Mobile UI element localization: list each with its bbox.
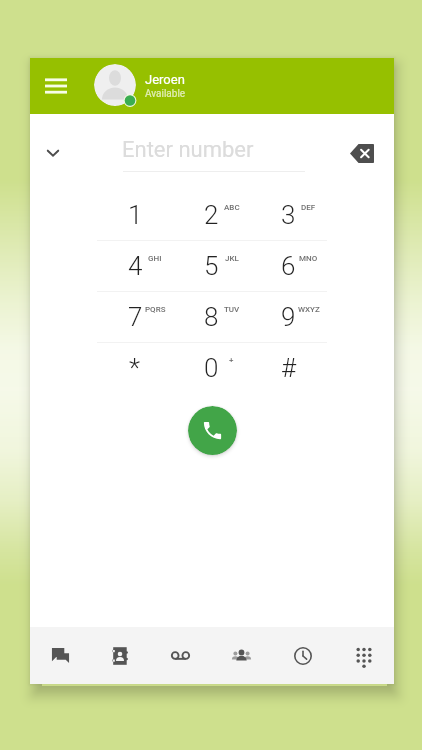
staticText: 1: [128, 200, 143, 230]
staticText: DEF: [301, 203, 316, 212]
button[interactable]: 7: [97, 292, 173, 342]
staticText: WXYZ: [298, 305, 320, 314]
button[interactable]: #: [250, 343, 327, 393]
staticText: Available: [145, 88, 186, 100]
staticText: 0: [204, 353, 219, 383]
staticText: ABC: [224, 203, 240, 212]
staticText: Jeroen: [145, 72, 185, 87]
staticText: JKL: [225, 254, 239, 263]
button[interactable]: 2: [173, 190, 250, 240]
button[interactable]: Messages: [30, 627, 90, 684]
staticText: *: [129, 353, 141, 383]
button[interactable]: Recents: [272, 627, 333, 684]
button[interactable]: 1: [97, 190, 173, 240]
button[interactable]: *: [97, 343, 173, 393]
staticText: 9: [281, 302, 296, 332]
staticText: TUV: [224, 305, 240, 314]
button[interactable]: Menu: [42, 72, 70, 100]
button[interactable]: Call: [188, 406, 237, 455]
button[interactable]: Backspace: [347, 138, 377, 168]
button[interactable]: 9: [250, 292, 327, 342]
staticText: 3: [281, 200, 296, 230]
staticText: +: [229, 356, 234, 365]
staticText: 7: [128, 302, 143, 332]
button[interactable]: 8: [173, 292, 250, 342]
button[interactable]: 3: [250, 190, 327, 240]
staticText: Enter number: [122, 137, 254, 163]
button[interactable]: 4: [97, 241, 173, 291]
staticText: 2: [204, 200, 219, 230]
button[interactable]: 6: [250, 241, 327, 291]
button[interactable]: Voicemail: [150, 627, 211, 684]
staticText: PQRS: [145, 305, 166, 314]
staticText: 8: [204, 302, 219, 332]
staticText: MNO: [299, 254, 318, 263]
button[interactable]: Groups: [211, 627, 272, 684]
button[interactable]: Dialpad: [333, 627, 394, 684]
button[interactable]: 5: [173, 241, 250, 291]
staticText: GHI: [148, 254, 162, 263]
staticText: #: [281, 353, 297, 383]
staticText: 4: [128, 251, 143, 281]
button[interactable]: 0: [173, 343, 250, 393]
button[interactable]: Collapse: [38, 138, 68, 168]
staticText: 5: [204, 251, 219, 281]
button[interactable]: Contacts: [90, 627, 150, 684]
staticText: 6: [281, 251, 296, 281]
